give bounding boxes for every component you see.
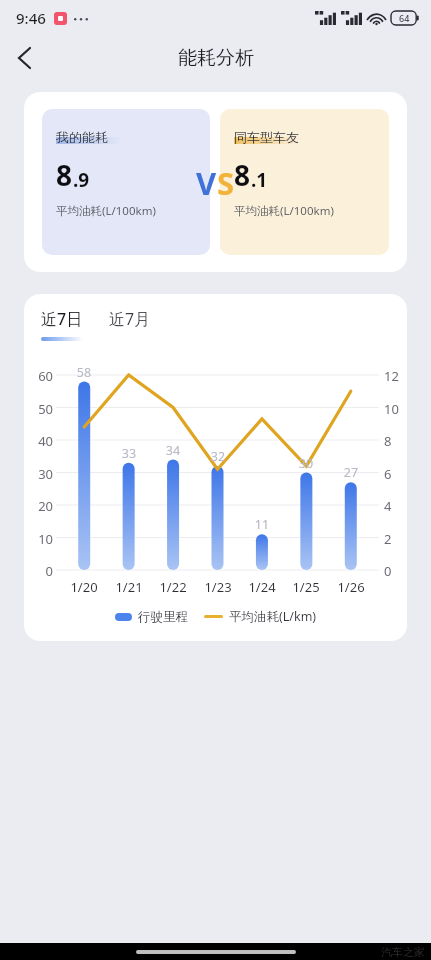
staticText: 近7日: [41, 308, 83, 330]
staticText: 0: [384, 562, 392, 580]
staticText: V: [196, 162, 217, 204]
button[interactable]: 近7月: [109, 308, 151, 341]
staticText: 58: [70, 364, 98, 381]
staticText: 30: [292, 455, 320, 472]
staticText: 1/24: [242, 578, 282, 596]
button[interactable]: 我的能耗: [42, 109, 210, 255]
staticText: 8: [234, 156, 251, 194]
staticText: 8: [384, 432, 392, 450]
staticText: 能耗分析: [178, 46, 254, 70]
staticText: 1/20: [64, 578, 104, 596]
staticText: 1/22: [153, 578, 193, 596]
staticText: 6: [384, 465, 392, 483]
staticText: 34: [159, 442, 187, 459]
staticText: 8: [56, 156, 73, 194]
staticText: 4: [384, 497, 392, 515]
staticText: 1/25: [286, 578, 326, 596]
staticText: 近7月: [109, 308, 151, 330]
staticText: 同车型车友: [234, 129, 299, 145]
button[interactable]: 同车型车友: [220, 109, 389, 255]
staticText: 40: [24, 432, 53, 450]
staticText: 行驶里程: [138, 609, 188, 625]
staticText: 50: [24, 400, 53, 418]
staticText: 11: [248, 516, 276, 533]
staticText: 30: [24, 465, 53, 483]
staticText: 10: [24, 530, 53, 548]
staticText: 2: [384, 530, 392, 548]
staticText: 9:46: [16, 8, 46, 28]
button[interactable]: Back: [0, 36, 48, 80]
staticText: 1/23: [198, 578, 238, 596]
staticText: 12: [384, 367, 399, 385]
staticText: 32: [204, 448, 232, 465]
staticText: S: [217, 162, 235, 204]
staticText: 1/26: [331, 578, 371, 596]
staticText: 平均油耗(L/km): [229, 608, 317, 625]
staticText: 平均油耗(L/100km): [56, 203, 156, 219]
staticText: 0: [24, 562, 53, 580]
staticText: 60: [24, 367, 53, 385]
staticText: .1: [251, 167, 268, 193]
staticText: .9: [73, 167, 90, 193]
staticText: 20: [24, 497, 53, 515]
staticText: 汽车之家: [381, 945, 425, 959]
staticText: 我的能耗: [56, 129, 108, 145]
staticText: 平均油耗(L/100km): [234, 203, 334, 219]
button[interactable]: 近7日: [41, 308, 83, 341]
staticText: 1/21: [109, 578, 149, 596]
staticText: 33: [115, 445, 143, 462]
staticText: 64: [399, 12, 410, 24]
staticText: 10: [384, 400, 399, 418]
staticText: 27: [337, 464, 365, 481]
